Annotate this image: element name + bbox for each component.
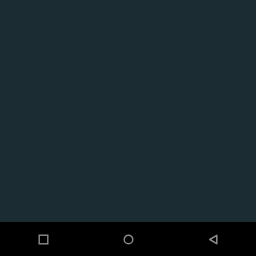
button[interactable]: Recent apps	[0, 222, 86, 256]
button[interactable]: Back	[171, 222, 256, 256]
button[interactable]: Home	[86, 222, 171, 256]
